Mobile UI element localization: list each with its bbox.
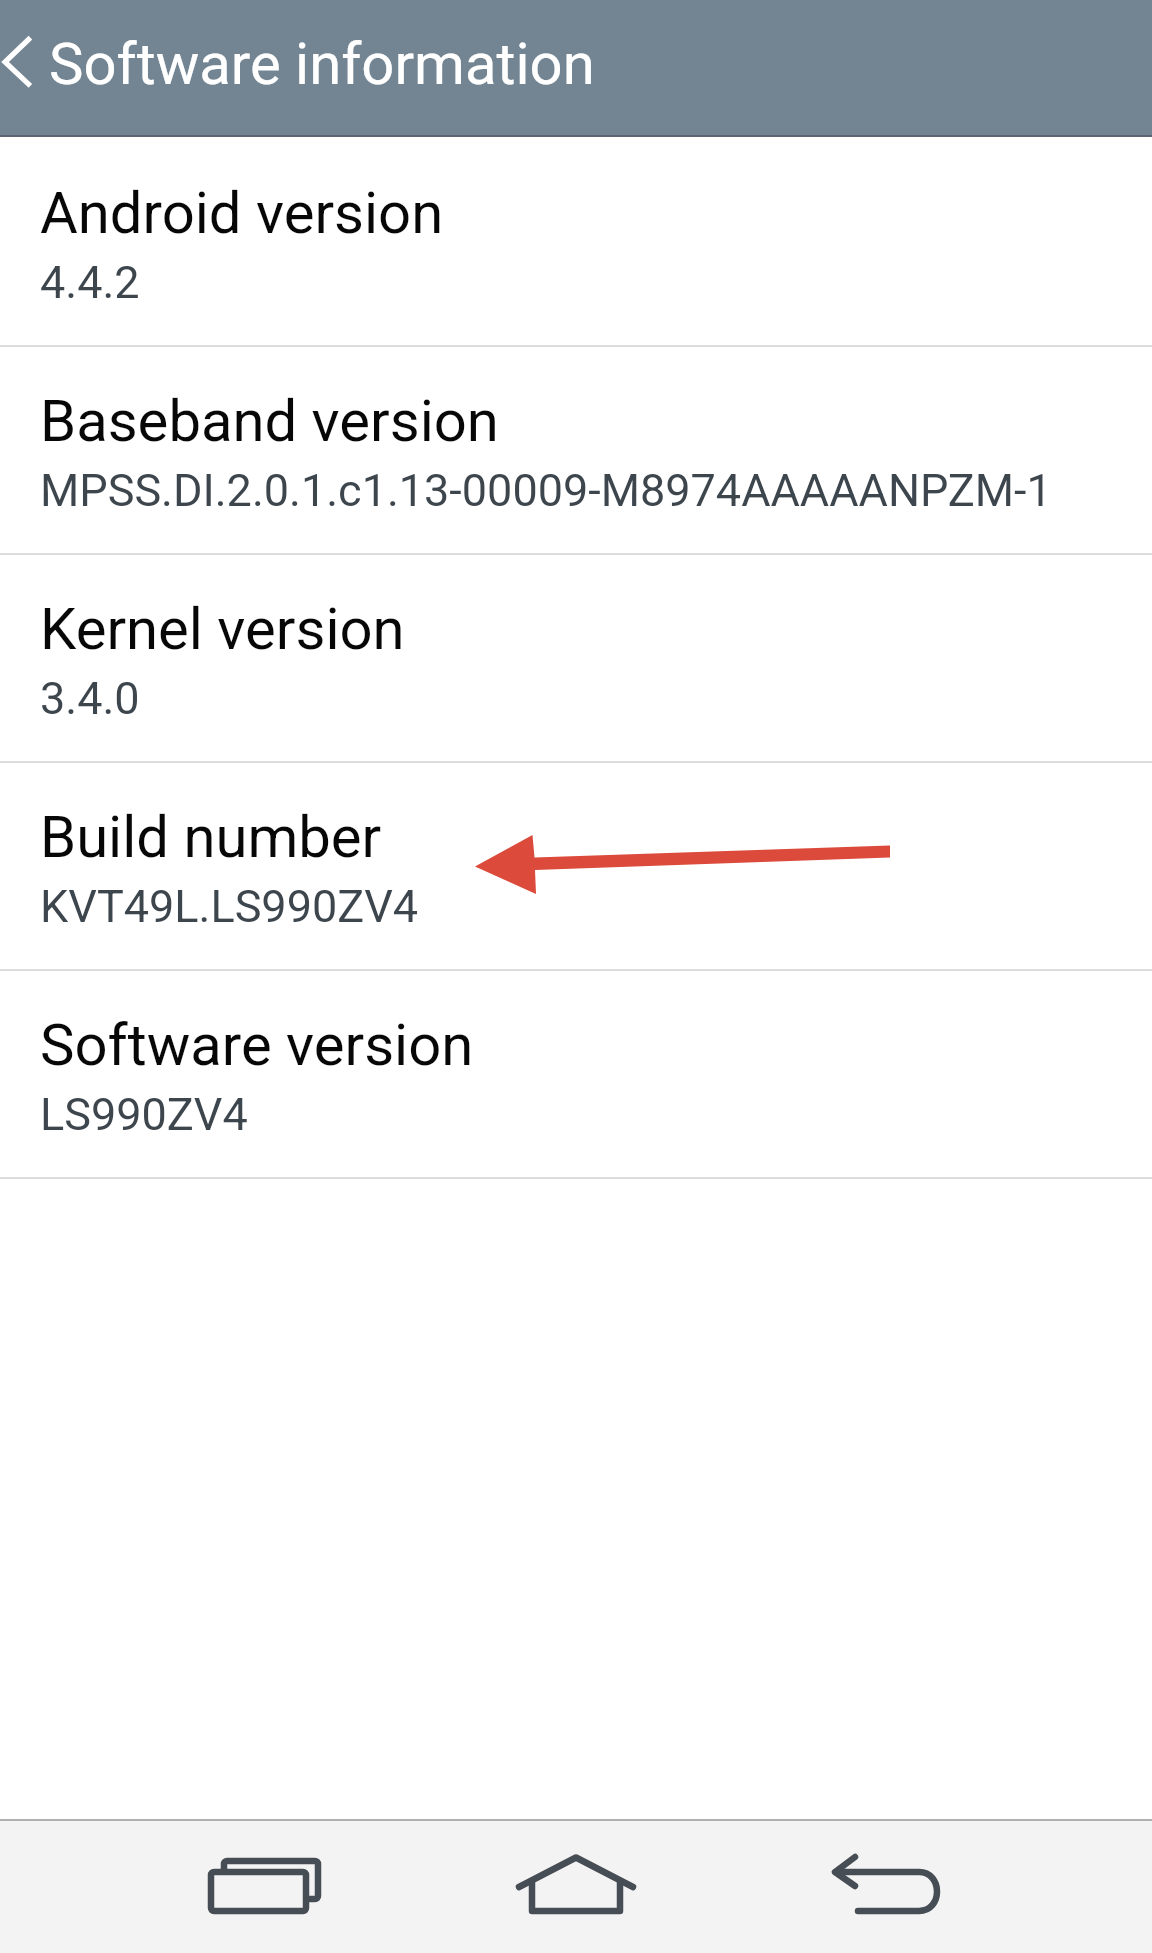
staticText: Software version (40, 1011, 474, 1079)
button[interactable]: Recent apps (167, 1821, 367, 1953)
button[interactable]: Kernel version (0, 555, 1152, 761)
button[interactable]: Home (476, 1821, 676, 1953)
staticText: 4.4.2 (40, 256, 140, 309)
staticText: Kernel version (40, 595, 405, 663)
staticText: Android version (40, 179, 444, 247)
staticText: KVT49L.LS990ZV4 (40, 880, 419, 933)
button[interactable]: Software version (0, 971, 1152, 1177)
button[interactable]: Build number (0, 763, 1152, 969)
staticText: Software information (49, 30, 595, 98)
staticText: Build number (40, 803, 382, 871)
staticText: Baseband version (40, 387, 499, 455)
button[interactable]: Navigate up (0, 0, 46, 137)
staticText: 3.4.0 (40, 672, 140, 725)
button[interactable]: Android version (0, 139, 1152, 345)
staticText: LS990ZV4 (40, 1088, 248, 1141)
button[interactable]: Back (787, 1821, 987, 1953)
staticText: MPSS.DI.2.0.1.c1.13-00009-M8974AAAAANPZM… (40, 464, 1052, 517)
button[interactable]: Baseband version (0, 347, 1152, 553)
